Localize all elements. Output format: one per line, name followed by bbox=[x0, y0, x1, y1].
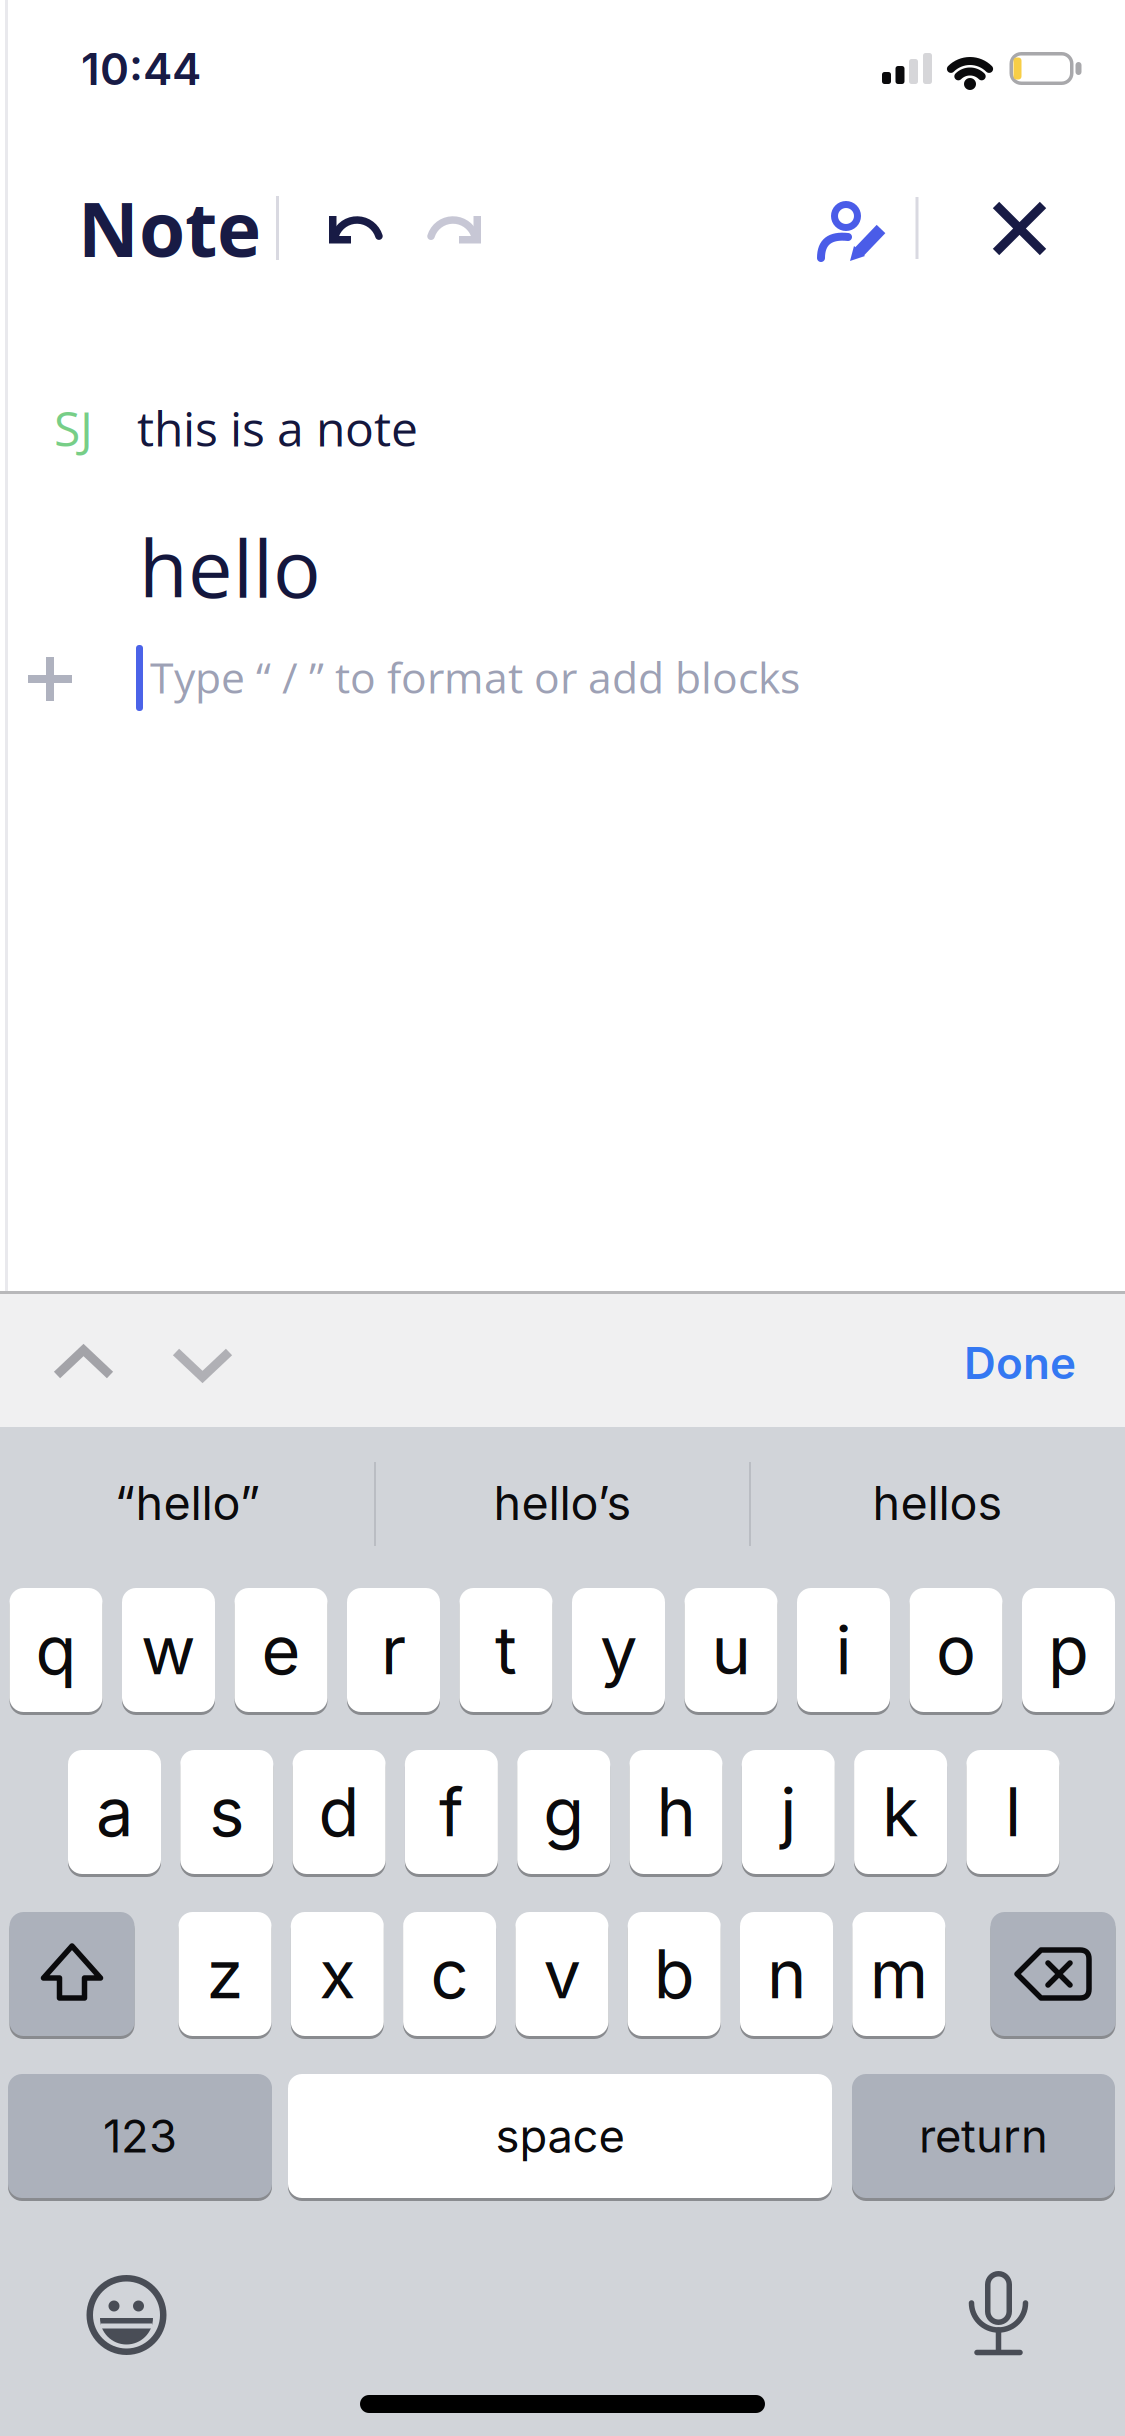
button[interactable]: l bbox=[966, 1748, 1059, 1875]
button[interactable]: e bbox=[234, 1586, 327, 1713]
button[interactable]: return bbox=[852, 2072, 1115, 2199]
staticText: hello’s bbox=[493, 1475, 631, 1531]
button[interactable] bbox=[312, 197, 402, 277]
staticText: hello bbox=[139, 513, 321, 621]
staticText: u bbox=[711, 1610, 750, 1690]
button[interactable]: b bbox=[628, 1910, 721, 2037]
button[interactable]: h bbox=[629, 1748, 722, 1875]
button[interactable]: p bbox=[1022, 1586, 1115, 1713]
staticText: hellos bbox=[872, 1475, 1002, 1531]
staticText: k bbox=[882, 1772, 919, 1852]
staticText: a bbox=[96, 1772, 133, 1852]
button[interactable]: z bbox=[178, 1910, 271, 2037]
staticText: 123 bbox=[103, 2109, 177, 2163]
button[interactable]: “hello” bbox=[7, 1443, 367, 1563]
button[interactable]: o bbox=[909, 1586, 1002, 1713]
button[interactable]: s bbox=[180, 1748, 273, 1875]
staticText: b bbox=[654, 1934, 695, 2014]
button[interactable]: m bbox=[852, 1910, 945, 2037]
button[interactable]: d bbox=[293, 1748, 386, 1875]
button[interactable] bbox=[801, 183, 901, 273]
button[interactable]: v bbox=[515, 1910, 608, 2037]
staticText: Note bbox=[78, 177, 261, 279]
staticText: m bbox=[870, 1934, 928, 2014]
staticText: f bbox=[439, 1772, 464, 1852]
staticText: y bbox=[600, 1610, 637, 1690]
button[interactable]: y bbox=[572, 1586, 665, 1713]
button[interactable]: Done bbox=[920, 1313, 1120, 1413]
staticText: this is a note bbox=[137, 395, 418, 461]
staticText: p bbox=[1048, 1610, 1089, 1690]
staticText: w bbox=[141, 1610, 196, 1690]
staticText: “hello” bbox=[114, 1475, 260, 1531]
staticText: c bbox=[431, 1934, 469, 2014]
button[interactable] bbox=[958, 2260, 1038, 2360]
button[interactable]: n bbox=[740, 1910, 833, 2037]
button[interactable] bbox=[20, 649, 80, 709]
staticText: t bbox=[495, 1610, 517, 1690]
staticText: 10:44 bbox=[81, 42, 201, 96]
staticText: e bbox=[261, 1610, 300, 1690]
button[interactable]: f bbox=[405, 1748, 498, 1875]
staticText: o bbox=[936, 1610, 976, 1690]
staticText: h bbox=[656, 1772, 695, 1852]
staticText: return bbox=[919, 2109, 1048, 2163]
button[interactable] bbox=[162, 1339, 242, 1389]
button[interactable]: x bbox=[291, 1910, 384, 2037]
button[interactable]: c bbox=[403, 1910, 496, 2037]
staticText: Done bbox=[964, 1336, 1076, 1390]
button[interactable] bbox=[43, 1337, 123, 1387]
button[interactable]: j bbox=[742, 1748, 835, 1875]
button[interactable]: g bbox=[517, 1748, 610, 1875]
button[interactable] bbox=[990, 1910, 1115, 2037]
staticText: z bbox=[206, 1934, 243, 2014]
staticText: j bbox=[780, 1772, 796, 1852]
staticText: g bbox=[543, 1772, 584, 1852]
staticText: space bbox=[495, 2109, 624, 2163]
button[interactable] bbox=[9, 1910, 134, 2037]
button[interactable]: hello’s bbox=[382, 1443, 742, 1563]
button[interactable]: a bbox=[68, 1748, 161, 1875]
button[interactable] bbox=[81, 2270, 171, 2360]
staticText: n bbox=[767, 1934, 806, 2014]
staticText: Type “ / ” to format or add blocks bbox=[150, 648, 800, 706]
button[interactable]: w bbox=[122, 1586, 215, 1713]
staticText: i bbox=[835, 1610, 851, 1690]
button[interactable]: r bbox=[347, 1586, 440, 1713]
button[interactable] bbox=[408, 197, 498, 277]
staticText: x bbox=[319, 1934, 355, 2014]
button[interactable]: space bbox=[288, 2072, 832, 2199]
staticText: SJ bbox=[54, 395, 93, 461]
staticText: l bbox=[1005, 1772, 1021, 1852]
button[interactable] bbox=[979, 188, 1059, 268]
button[interactable]: hellos bbox=[757, 1443, 1117, 1563]
button[interactable]: i bbox=[797, 1586, 890, 1713]
button[interactable]: q bbox=[9, 1586, 102, 1713]
button[interactable]: u bbox=[684, 1586, 777, 1713]
staticText: q bbox=[35, 1610, 76, 1690]
button[interactable]: t bbox=[459, 1586, 552, 1713]
staticText: r bbox=[381, 1610, 406, 1690]
staticText: v bbox=[543, 1934, 580, 2014]
staticText: s bbox=[209, 1772, 244, 1852]
button[interactable]: 123 bbox=[8, 2072, 272, 2199]
button[interactable]: k bbox=[854, 1748, 947, 1875]
staticText: d bbox=[319, 1772, 360, 1852]
